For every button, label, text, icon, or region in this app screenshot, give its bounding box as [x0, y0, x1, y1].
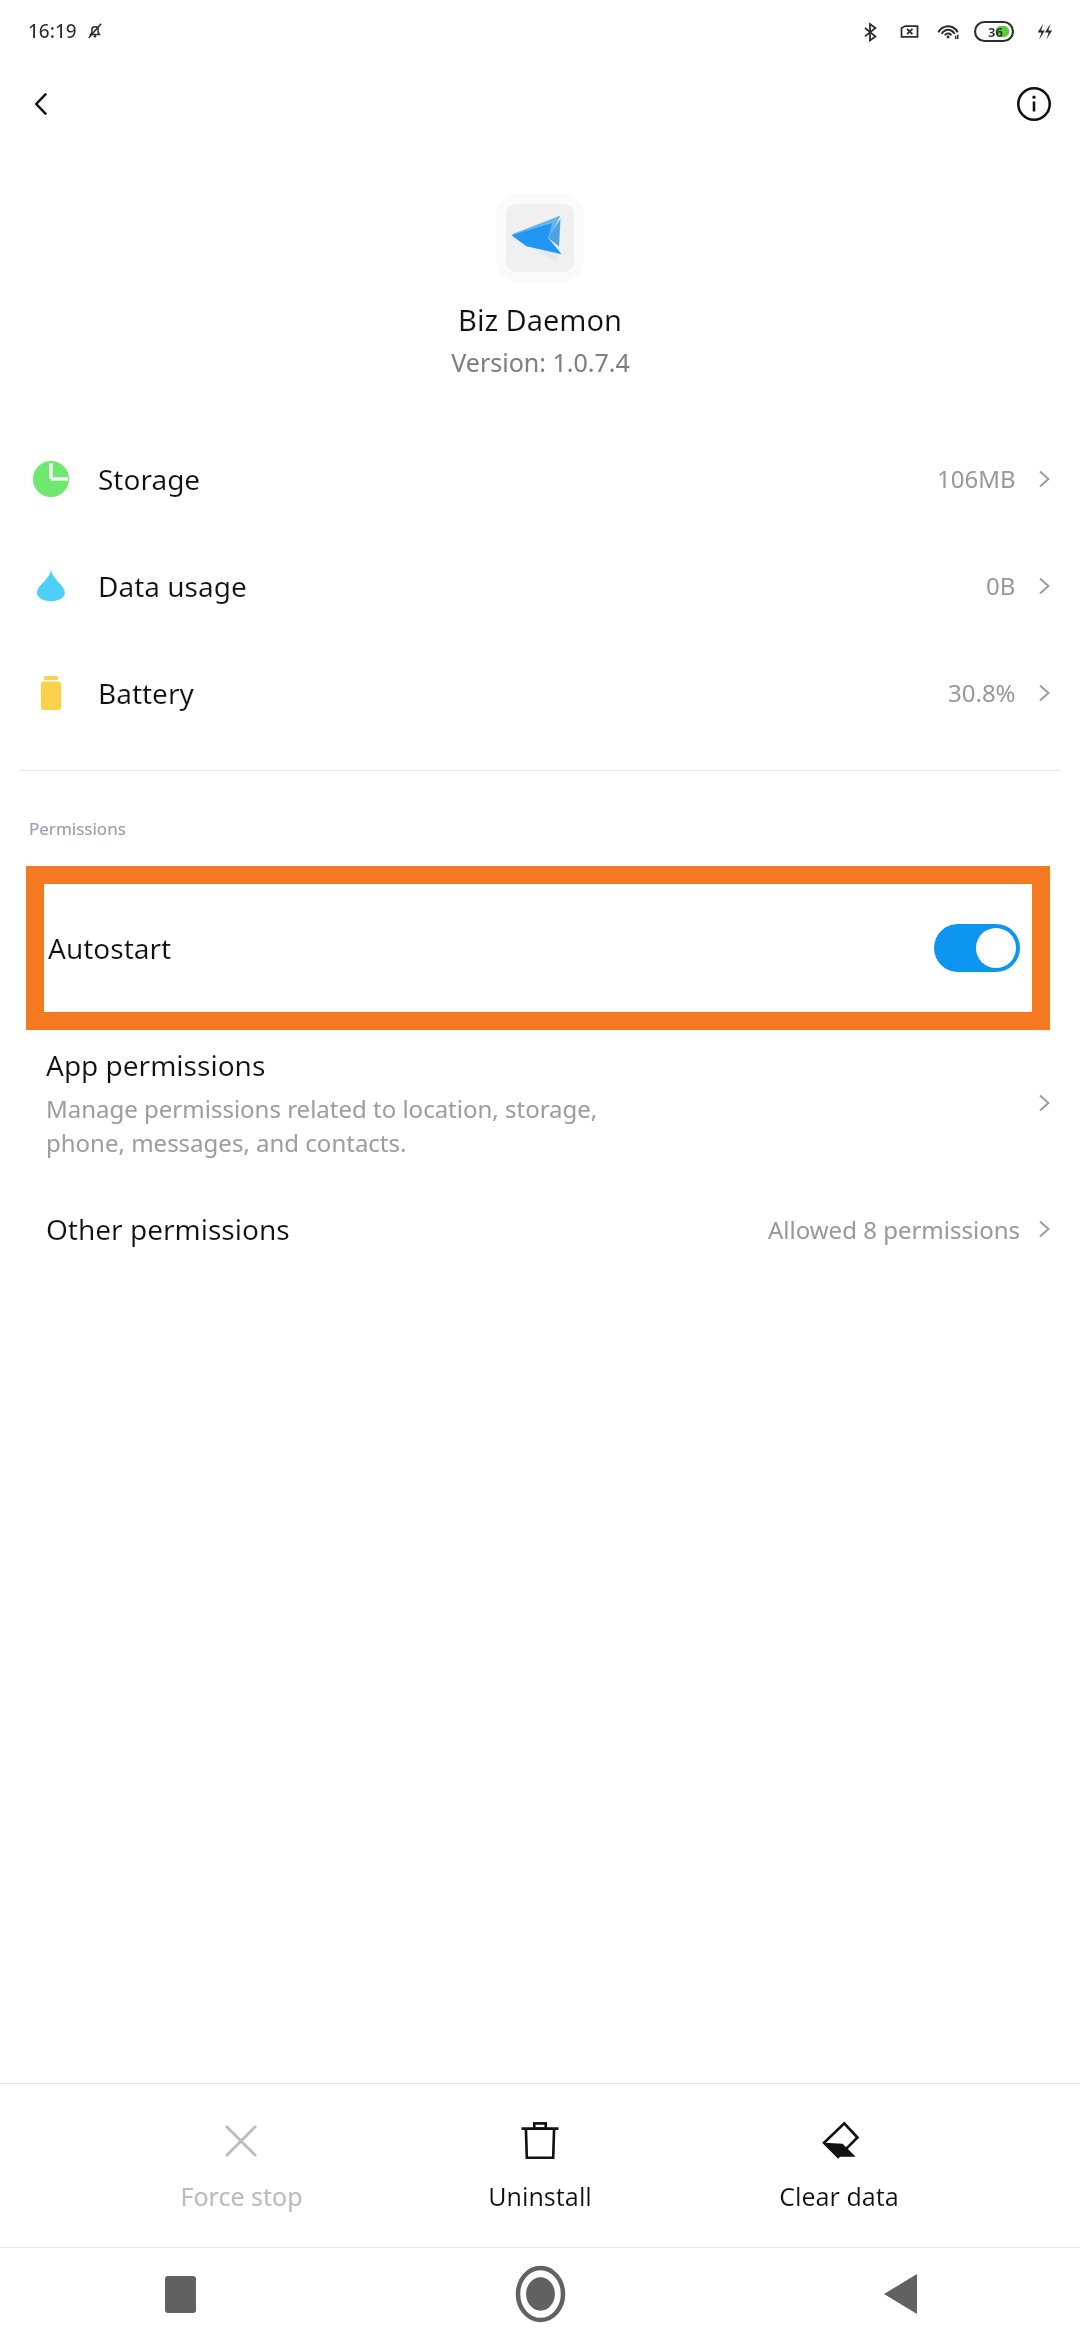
staticText: Uninstall: [488, 2179, 592, 2213]
staticText: 16:19: [28, 18, 77, 44]
button[interactable]: Autostart: [0, 878, 1080, 1018]
staticText: App permissions: [46, 1046, 266, 1084]
button[interactable]: Back: [720, 2248, 1080, 2340]
button[interactable]: Back: [14, 76, 70, 132]
button[interactable]: Data usage: [0, 532, 1080, 639]
staticText: Version: 1.0.7.4: [451, 345, 630, 379]
staticText: Autostart: [48, 929, 172, 967]
staticText: Battery: [98, 674, 194, 712]
button[interactable]: Home: [360, 2248, 720, 2340]
staticText: Data usage: [98, 567, 247, 605]
staticText: 106MB: [937, 462, 1016, 495]
staticText: 30.8%: [948, 676, 1016, 709]
staticText: Allowed 8 permissions: [768, 1213, 1020, 1246]
staticText: 0B: [986, 569, 1016, 602]
staticText: Permissions: [29, 817, 126, 840]
button[interactable]: Other permissions: [0, 1177, 1080, 1281]
button[interactable]: App permissions: [0, 1038, 1080, 1177]
staticText: Biz Daemon: [458, 300, 622, 339]
button[interactable]: App info: [1006, 76, 1062, 132]
button[interactable]: Autostart toggle on: [934, 924, 1020, 972]
button[interactable]: Clear data: [744, 2084, 934, 2247]
button[interactable]: Storage: [0, 425, 1080, 532]
staticText: 36: [988, 23, 1003, 41]
button[interactable]: Force stop: [146, 2084, 336, 2247]
staticText: Force stop: [180, 2179, 303, 2213]
staticText: Storage: [98, 460, 201, 498]
staticText: Manage permissions related to location, …: [46, 1092, 598, 1159]
button[interactable]: Recents: [0, 2248, 360, 2340]
button[interactable]: Uninstall: [445, 2084, 635, 2247]
staticText: Clear data: [779, 2179, 899, 2213]
staticText: Other permissions: [46, 1210, 290, 1248]
button[interactable]: Battery: [0, 639, 1080, 746]
